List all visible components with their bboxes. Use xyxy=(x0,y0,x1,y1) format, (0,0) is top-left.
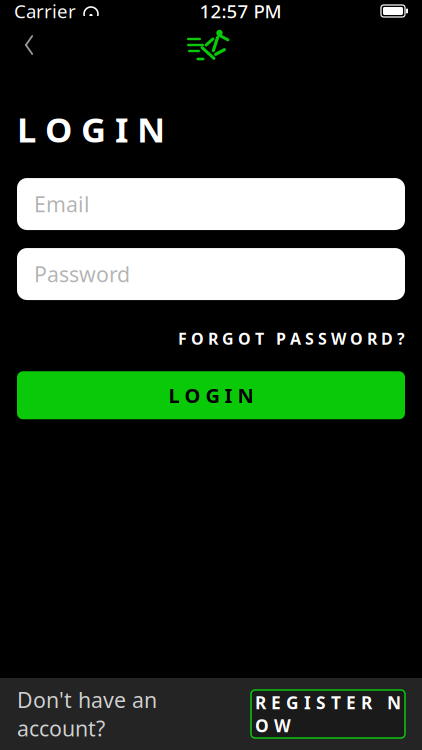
staticText: Don't have an account? xyxy=(17,686,157,742)
staticText: Carrier xyxy=(14,0,76,23)
button[interactable]: F O R G O T P A S S W O R D ? xyxy=(178,322,405,355)
button[interactable]: R E G I S T E R N O W xyxy=(251,690,405,738)
staticText: Email xyxy=(34,190,90,218)
button[interactable]: Password xyxy=(17,248,405,300)
staticText: 12:57 PM xyxy=(199,0,281,23)
button[interactable]: Back xyxy=(8,24,50,66)
staticText: F O R G O T P A S S W O R D ? xyxy=(178,328,405,349)
button[interactable]: L O G I N xyxy=(17,371,405,419)
staticText: L O G I N xyxy=(168,382,253,409)
button[interactable]: Email xyxy=(17,178,405,230)
staticText: Password xyxy=(34,260,130,288)
staticText: R E G I S T E R N O W xyxy=(255,691,401,737)
staticText: L O G I N xyxy=(17,106,165,152)
